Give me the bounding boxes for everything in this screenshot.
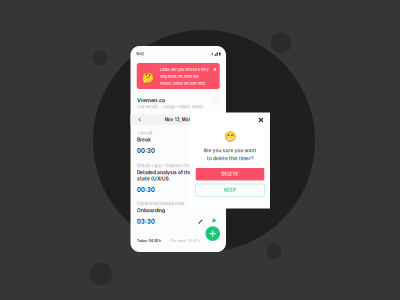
button[interactable]: Add timer — [205, 226, 220, 241]
staticText: Break — [137, 137, 151, 143]
staticText: 00:30 — [137, 186, 155, 193]
staticText: state (UX/UI). — [137, 176, 171, 182]
staticText: Looks like you missed a very — [160, 67, 209, 72]
staticText: Nov 13, Mon — [165, 117, 192, 122]
button[interactable]: Start timer — [211, 97, 219, 105]
button[interactable]: Start — [211, 216, 219, 225]
button[interactable]: Previous day — [137, 116, 143, 123]
staticText: long break the other day. — [160, 74, 200, 79]
staticText: to delete this timer? — [207, 156, 253, 161]
staticText: 19:02 — [136, 52, 144, 56]
staticText: Detailed analysis of the cur — [137, 169, 201, 175]
staticText: Department development — [137, 201, 184, 206]
staticText: 🤔 — [142, 72, 154, 83]
staticText: 03:30 — [137, 218, 155, 225]
staticText: 😬 — [223, 131, 236, 142]
staticText: Mobile • app • Business Strat — [137, 163, 192, 168]
staticText: This week: 04:30 h — [170, 239, 200, 243]
staticText: Vremen.co — [137, 97, 165, 103]
staticText: 00:30 — [137, 147, 155, 154]
staticText: Today: 04:30 h — [137, 239, 161, 243]
staticText: KEEP — [224, 188, 236, 193]
staticText: Are you sure you want — [203, 148, 256, 153]
button[interactable]: Dismiss — [211, 66, 218, 73]
button[interactable]: Close — [256, 115, 266, 125]
staticText: Ana Horvat — Design • mobile, Mobile — [137, 104, 203, 109]
staticText: DELETE — [221, 172, 238, 177]
staticText: Please, check the time here. — [160, 81, 206, 86]
button[interactable]: KEEP — [196, 184, 264, 196]
button[interactable]: Edit — [196, 216, 205, 225]
button[interactable]: DELETE — [196, 168, 264, 180]
staticText: Time off — [137, 131, 153, 136]
staticText: Onboarding — [137, 208, 165, 213]
